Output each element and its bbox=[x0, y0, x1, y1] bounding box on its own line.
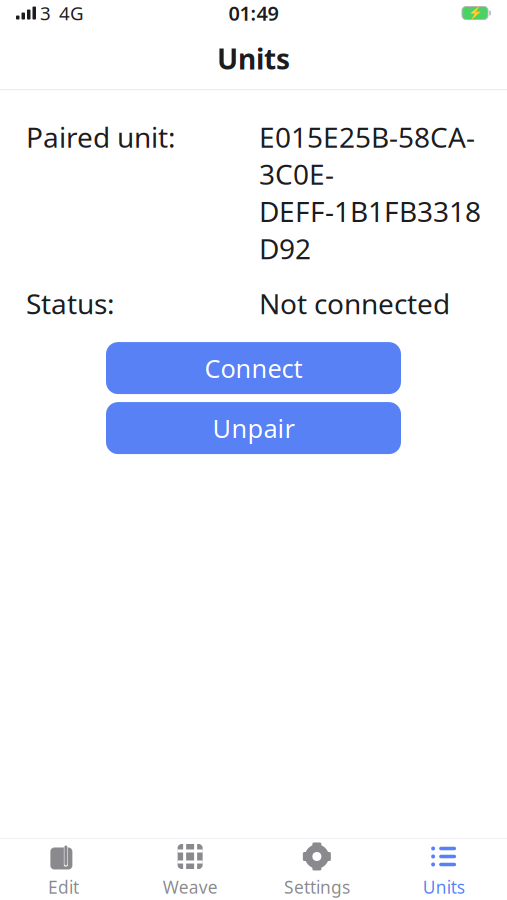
staticText: Status: bbox=[26, 285, 115, 322]
staticText: 3 bbox=[40, 1, 51, 25]
staticText: Settings bbox=[284, 875, 350, 898]
button[interactable]: Settings bbox=[253, 834, 380, 900]
staticText: E015E25B-58CA-3C0E-DEFF-1B1FB3318D92 bbox=[259, 118, 481, 267]
button[interactable]: Edit bbox=[0, 834, 127, 900]
button[interactable]: Units bbox=[380, 834, 507, 900]
staticText: Weave bbox=[163, 875, 218, 898]
staticText: Units bbox=[217, 40, 290, 77]
staticText: Connect bbox=[204, 351, 302, 385]
button[interactable]: Unpair bbox=[106, 402, 401, 454]
staticText: 4G bbox=[59, 1, 84, 25]
staticText: Paired unit: bbox=[26, 118, 176, 155]
button[interactable]: Weave bbox=[127, 834, 254, 900]
staticText: 01:49 bbox=[228, 0, 278, 26]
staticText: Not connected bbox=[259, 285, 450, 322]
staticText: Units bbox=[423, 875, 465, 898]
staticText: ⚡ bbox=[467, 6, 482, 20]
staticText: Unpair bbox=[212, 411, 294, 445]
staticText: Edit bbox=[48, 875, 79, 898]
button[interactable]: Connect bbox=[106, 342, 401, 394]
